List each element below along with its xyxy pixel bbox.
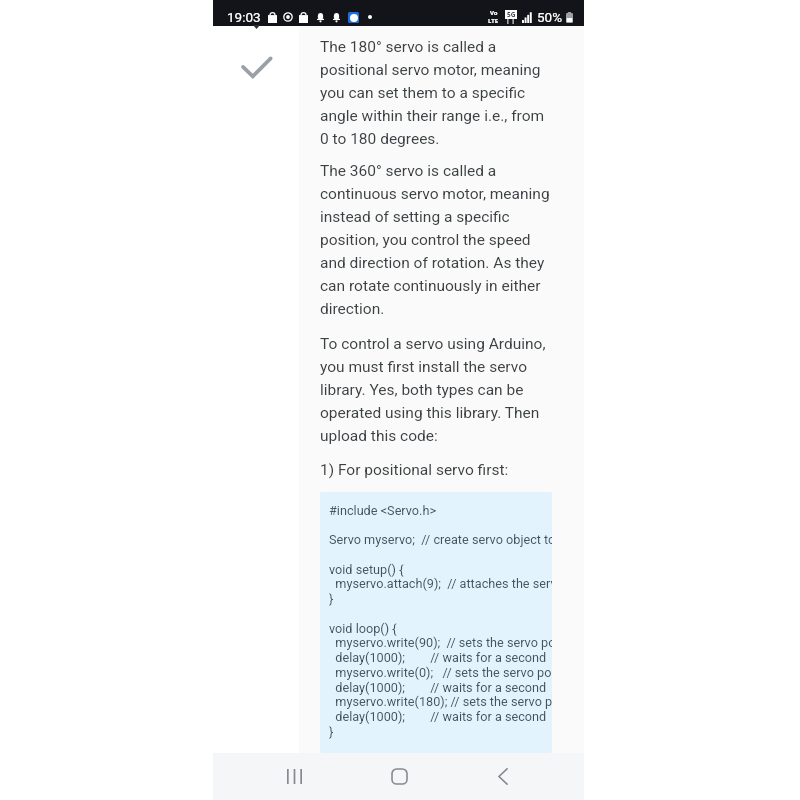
staticText: 50% — [537, 9, 563, 25]
staticText: 1) For positional servo first: — [320, 461, 509, 479]
staticText: myservo.write(90); // sets the servo po — [329, 635, 552, 650]
button[interactable]: Home — [347, 753, 451, 800]
staticText: delay(1000); // waits for a second — [329, 709, 547, 724]
staticText: } — [329, 591, 334, 606]
staticText: void setup() { — [329, 562, 404, 577]
staticText: To control a servo using Arduino, you mu… — [320, 335, 554, 445]
staticText: myservo.write(180); // sets the servo p — [329, 694, 552, 709]
button[interactable]: Recent apps — [242, 753, 347, 800]
staticText: LTE — [488, 17, 499, 25]
staticText: myservo.attach(9); // attaches the serv — [329, 576, 552, 591]
staticText: 5G — [507, 10, 516, 19]
staticText: } — [329, 724, 334, 739]
staticText: myservo.write(0); // sets the servo po — [329, 665, 552, 680]
staticText: The 360° servo is called a continuous se… — [320, 162, 554, 318]
staticText: 19:03 — [227, 9, 261, 25]
staticText: #include <Servo.h> — [329, 503, 437, 518]
staticText: delay(1000); // waits for a second — [329, 680, 547, 695]
staticText: void loop() { — [329, 621, 397, 636]
staticText: delay(1000); // waits for a second — [329, 650, 547, 665]
staticText: Servo myservo; // create servo object to — [329, 532, 552, 547]
staticText: The 180° servo is called a positional se… — [320, 38, 554, 148]
button[interactable]: Mark as done — [241, 55, 273, 79]
button[interactable]: Back — [451, 753, 555, 800]
staticText: Vo — [490, 9, 498, 17]
